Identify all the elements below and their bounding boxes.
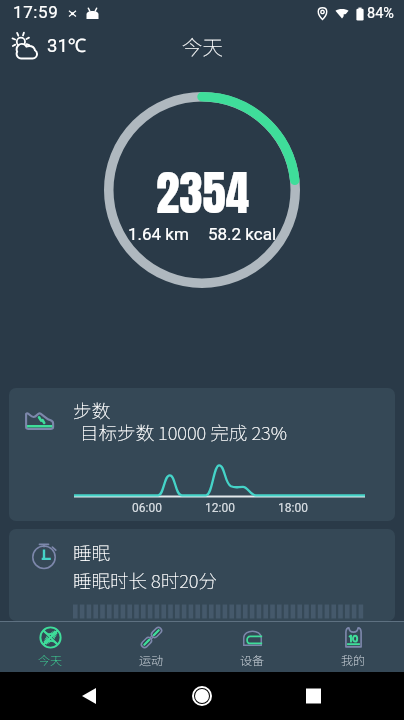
button[interactable]: Profile [303, 621, 404, 672]
staticText: 今天 [182, 31, 223, 61]
button[interactable]: 睡眠 [9, 529, 395, 621]
staticText: 31℃ [47, 32, 87, 57]
button[interactable]: 31℃ [9, 31, 89, 61]
staticText: 18:00 [278, 501, 308, 515]
staticText: 12:00 [205, 501, 235, 515]
staticText: 目标步数 10000 完成 23% [80, 419, 287, 446]
button[interactable]: Workout [101, 621, 202, 672]
button[interactable]: Today [0, 621, 101, 672]
button[interactable]: 步数 [9, 388, 395, 521]
staticText: 我的 [341, 651, 366, 668]
staticText: 睡眠时长 8时20分 [73, 567, 217, 594]
button[interactable]: Back [60, 672, 120, 720]
staticText: 1.64 km [128, 224, 189, 244]
button[interactable]: Device [202, 621, 303, 672]
staticText: 睡眠 [73, 539, 111, 566]
staticText: 设备 [240, 651, 265, 668]
staticText: 步数 [73, 397, 111, 424]
staticText: 06:00 [132, 501, 162, 515]
staticText: 今天 [38, 651, 63, 668]
staticText: 运动 [139, 651, 164, 668]
staticText: 58.2 kcal [208, 224, 277, 244]
staticText: 17:59 [13, 2, 59, 22]
staticText: 84% [367, 5, 394, 22]
staticText: 2354 [156, 158, 249, 229]
